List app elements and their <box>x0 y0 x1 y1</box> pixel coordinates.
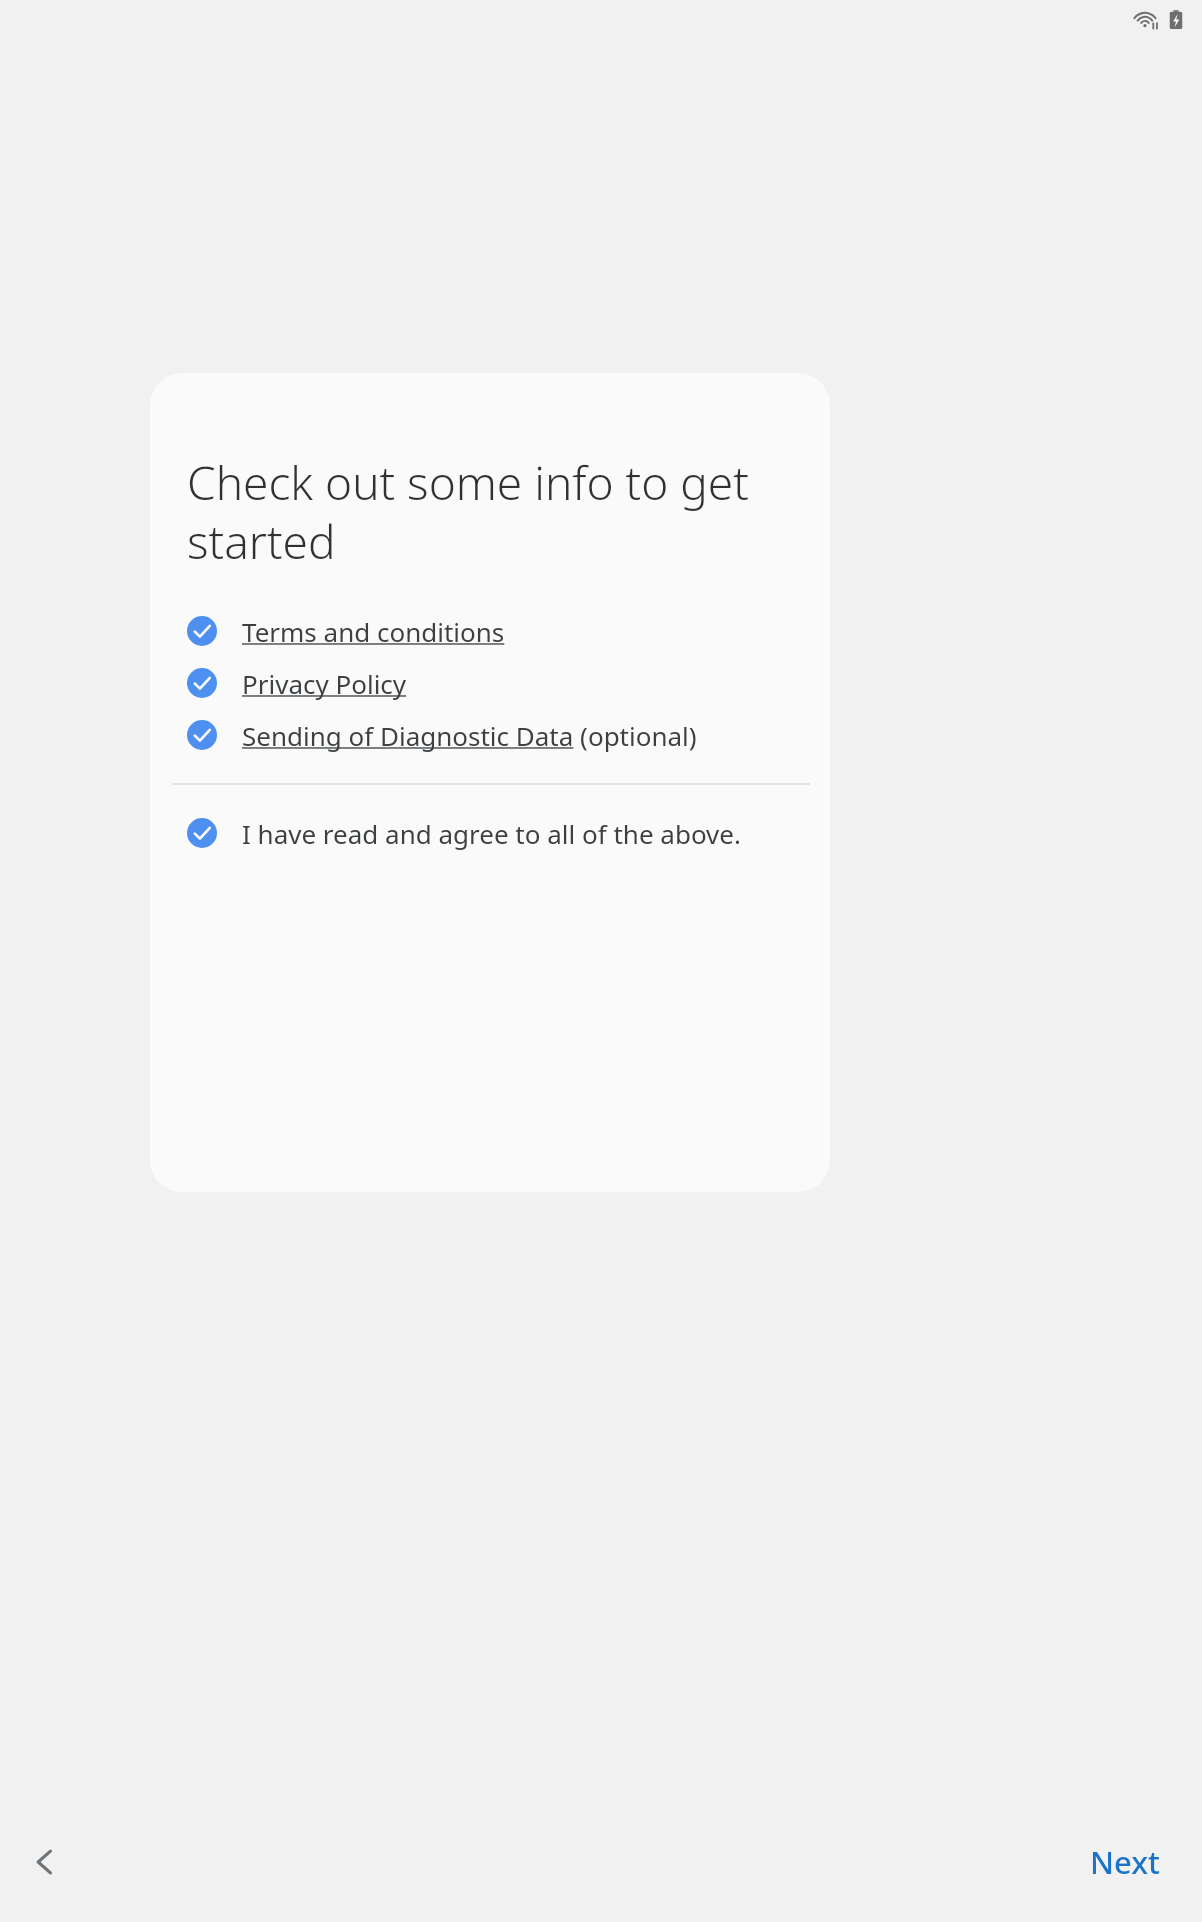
staticText: Terms and conditions <box>242 614 505 649</box>
staticText: Sending of Diagnostic Data (optional) <box>242 718 697 753</box>
staticText: Next <box>1090 1841 1160 1883</box>
button[interactable]: Terms and conditions <box>150 605 830 657</box>
button[interactable]: Next <box>1068 1827 1182 1897</box>
button[interactable]: Privacy Policy <box>150 657 830 709</box>
staticText: I have read and agree to all of the abov… <box>242 816 741 851</box>
button[interactable]: Back <box>14 1831 76 1893</box>
button[interactable]: Sending of Diagnostic Data (optional) <box>150 709 830 761</box>
button[interactable]: I have read and agree to all of the abov… <box>150 807 830 859</box>
staticText: Privacy Policy <box>242 666 407 701</box>
staticText: Check out some info to get started <box>187 451 790 572</box>
